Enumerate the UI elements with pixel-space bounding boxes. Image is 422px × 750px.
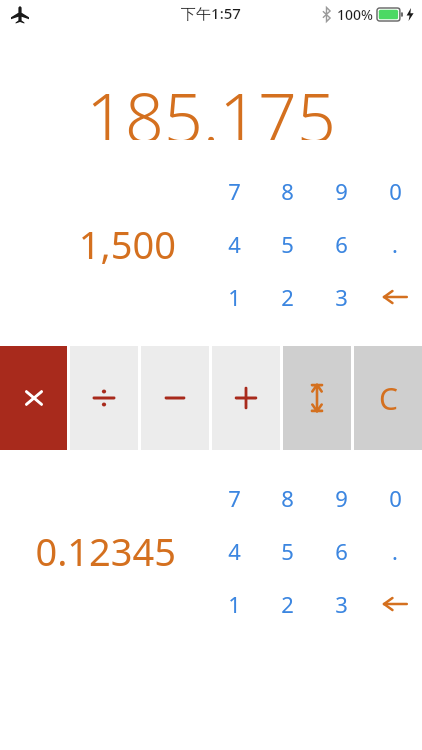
button[interactable]: 2 xyxy=(261,275,314,319)
button[interactable]: 0 xyxy=(368,169,422,213)
button[interactable]: Subtract xyxy=(141,346,209,450)
button[interactable]: 7 xyxy=(208,169,261,213)
button[interactable]: . xyxy=(368,222,422,266)
staticText: 8 xyxy=(281,176,294,206)
staticText: 5 xyxy=(281,536,294,566)
staticText: 4 xyxy=(228,229,241,259)
button[interactable]: 0 xyxy=(368,476,422,520)
button[interactable]: Backspace xyxy=(368,582,422,626)
button[interactable]: 4 xyxy=(208,222,261,266)
staticText: . xyxy=(392,536,398,566)
staticText: 0 xyxy=(389,176,402,206)
staticText: 2 xyxy=(281,282,294,312)
staticText: 3 xyxy=(335,282,348,312)
button[interactable]: 1 xyxy=(208,582,261,626)
button[interactable]: 7 xyxy=(208,476,261,520)
button[interactable]: Add xyxy=(212,346,280,450)
staticText: 0 xyxy=(389,483,402,513)
button[interactable]: 6 xyxy=(314,529,368,573)
button[interactable]: 1,500 xyxy=(0,218,176,270)
staticText: 5 xyxy=(281,229,294,259)
button[interactable]: 9 xyxy=(314,169,368,213)
button[interactable]: 8 xyxy=(261,476,314,520)
staticText: 185.175 xyxy=(86,70,336,140)
staticText: 9 xyxy=(335,176,348,206)
button[interactable]: 2 xyxy=(261,582,314,626)
staticText: 3 xyxy=(335,589,348,619)
button[interactable]: 1 xyxy=(208,275,261,319)
staticText: 7 xyxy=(228,483,241,513)
staticText: 下午1:57 xyxy=(181,3,241,23)
staticText: 8 xyxy=(281,483,294,513)
staticText: C xyxy=(379,378,398,419)
staticText: 100% xyxy=(337,5,373,24)
button[interactable]: 9 xyxy=(314,476,368,520)
staticText: 6 xyxy=(335,536,348,566)
button[interactable]: 8 xyxy=(261,169,314,213)
button[interactable]: Multiply xyxy=(0,346,67,450)
staticText: 1 xyxy=(228,589,241,619)
button[interactable]: Clear xyxy=(354,346,422,450)
button[interactable]: 6 xyxy=(314,222,368,266)
staticText: 2 xyxy=(281,589,294,619)
button[interactable]: Backspace xyxy=(368,275,422,319)
button[interactable]: 3 xyxy=(314,275,368,319)
button[interactable]: Divide xyxy=(70,346,138,450)
button[interactable]: 5 xyxy=(261,222,314,266)
staticText: . xyxy=(392,229,398,259)
button[interactable]: 0.12345 xyxy=(0,525,176,577)
button[interactable]: 4 xyxy=(208,529,261,573)
staticText: 1 xyxy=(228,282,241,312)
button[interactable]: . xyxy=(368,529,422,573)
staticText: 9 xyxy=(335,483,348,513)
button[interactable]: Swap operands xyxy=(283,346,351,450)
staticText: 4 xyxy=(228,536,241,566)
button[interactable]: 5 xyxy=(261,529,314,573)
staticText: 6 xyxy=(335,229,348,259)
staticText: 7 xyxy=(228,176,241,206)
button[interactable]: 3 xyxy=(314,582,368,626)
